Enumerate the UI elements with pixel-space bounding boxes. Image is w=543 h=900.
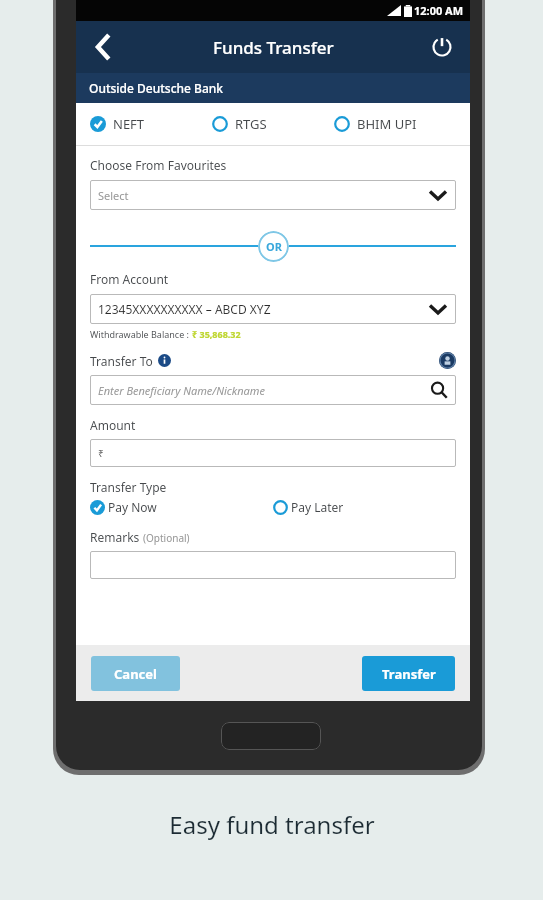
staticText: Transfer bbox=[382, 665, 436, 683]
staticText: Enter Beneficiary Name/Nickname bbox=[98, 383, 265, 398]
staticText: RTGS bbox=[235, 115, 267, 133]
button[interactable]: Add beneficiary bbox=[439, 352, 456, 369]
staticText: From Account bbox=[90, 271, 169, 287]
staticText: Select bbox=[98, 188, 129, 203]
staticText: Choose From Favourites bbox=[90, 157, 227, 173]
staticText: Pay Later bbox=[291, 499, 344, 515]
staticText: Remarks bbox=[90, 529, 143, 545]
button[interactable]: RTGS bbox=[212, 115, 334, 133]
other: Search bbox=[430, 381, 448, 399]
button[interactable]: Back bbox=[84, 27, 124, 67]
staticText: 12:00 AM bbox=[414, 3, 464, 18]
button[interactable] bbox=[90, 551, 456, 579]
staticText: Outside Deutsche Bank bbox=[89, 80, 224, 96]
button[interactable]: Pay Later bbox=[273, 499, 456, 515]
staticText: NEFT bbox=[113, 115, 145, 133]
button[interactable]: Info bbox=[158, 354, 171, 367]
staticText: OR bbox=[266, 239, 282, 254]
button[interactable]: Logout bbox=[424, 29, 460, 65]
staticText: Cancel bbox=[114, 665, 157, 683]
button[interactable]: Select bbox=[90, 180, 456, 210]
staticText: Transfer Type bbox=[90, 479, 167, 495]
staticText: (Optional) bbox=[143, 531, 190, 545]
staticText: BHIM UPI bbox=[357, 115, 417, 133]
button[interactable]: BHIM UPI bbox=[334, 115, 456, 133]
button[interactable]: Pay Now bbox=[90, 499, 273, 515]
staticText: Amount bbox=[90, 417, 136, 433]
button[interactable]: Enter Beneficiary Name/Nickname bbox=[90, 375, 456, 405]
staticText: Funds Transfer bbox=[213, 36, 334, 59]
button[interactable]: 12345XXXXXXXXXX – ABCD XYZ bbox=[90, 294, 456, 324]
staticText: ₹ bbox=[98, 446, 104, 460]
button[interactable]: Transfer bbox=[362, 656, 455, 691]
staticText: Easy fund transfer bbox=[169, 808, 375, 841]
staticText: 12345XXXXXXXXXX – ABCD XYZ bbox=[98, 301, 271, 317]
staticText: Pay Now bbox=[108, 499, 157, 515]
staticText: Withdrawable Balance : bbox=[90, 328, 192, 340]
staticText: Transfer To bbox=[90, 353, 153, 369]
button[interactable]: ₹ bbox=[90, 439, 456, 467]
button[interactable]: NEFT bbox=[90, 115, 212, 133]
button[interactable]: Cancel bbox=[91, 656, 180, 691]
staticText: ₹ 35,868.32 bbox=[192, 328, 241, 340]
